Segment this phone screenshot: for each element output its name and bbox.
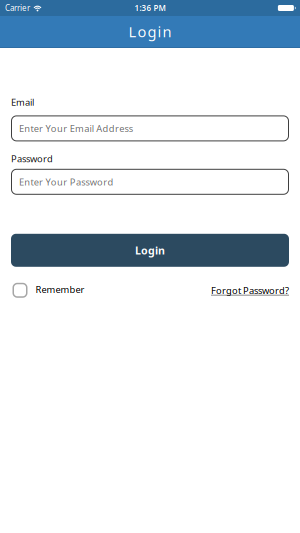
button[interactable]: Enter Your Password <box>11 169 289 195</box>
staticText: Remember <box>35 283 84 295</box>
button[interactable]: Forgot Password? <box>211 284 289 296</box>
button[interactable]: Login <box>11 234 289 267</box>
staticText: L o g i n <box>128 22 171 41</box>
staticText: Enter Your Email Address <box>19 122 133 135</box>
staticText: Email <box>11 96 34 108</box>
staticText: Password <box>11 152 53 165</box>
staticText: Forgot Password? <box>211 284 289 296</box>
staticText: Login <box>135 243 165 257</box>
staticText: 1:36 PM <box>134 3 165 13</box>
staticText: Enter Your Password <box>19 176 113 188</box>
staticText: Carrier <box>5 3 30 13</box>
button[interactable]: Remember <box>11 283 84 298</box>
button[interactable]: Enter Your Email Address <box>11 115 289 141</box>
